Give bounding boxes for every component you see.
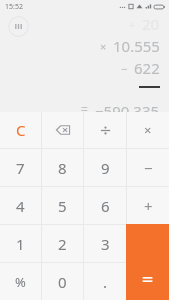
staticText: 8 bbox=[58, 158, 67, 178]
staticText: × bbox=[144, 121, 152, 139]
button[interactable]: . bbox=[84, 263, 126, 300]
button[interactable]: C bbox=[0, 112, 41, 148]
staticText: = bbox=[81, 101, 88, 112]
staticText: × bbox=[100, 39, 107, 54]
staticText: − bbox=[144, 158, 153, 178]
staticText: 6 bbox=[101, 196, 110, 216]
button[interactable]: History bbox=[8, 16, 29, 37]
button[interactable]: 9 bbox=[84, 149, 126, 186]
button[interactable]: 1 bbox=[0, 225, 41, 262]
button[interactable]: 6 bbox=[84, 187, 126, 224]
button[interactable]: 5 bbox=[42, 187, 83, 224]
button[interactable]: 2 bbox=[42, 225, 83, 262]
button[interactable]: × bbox=[127, 112, 169, 148]
staticText: + bbox=[144, 196, 153, 216]
button[interactable]: 4 bbox=[0, 187, 41, 224]
staticText: C bbox=[16, 120, 26, 140]
staticText: 4 bbox=[16, 196, 25, 216]
staticText: 15:52 bbox=[5, 2, 23, 12]
button[interactable] bbox=[84, 112, 126, 148]
staticText: 622 bbox=[134, 58, 160, 78]
button[interactable]: 7 bbox=[0, 149, 41, 186]
staticText: 0 bbox=[58, 272, 67, 292]
button[interactable]: − bbox=[127, 149, 169, 186]
button[interactable]: + bbox=[127, 187, 169, 224]
staticText: 10.555 bbox=[113, 36, 160, 56]
staticText: 2 bbox=[58, 234, 67, 254]
staticText: 1 bbox=[16, 234, 25, 254]
staticText: % bbox=[15, 273, 26, 291]
staticText: 9 bbox=[101, 158, 110, 178]
button[interactable]: 8 bbox=[42, 149, 83, 186]
staticText: 20 bbox=[142, 14, 160, 34]
button[interactable]: Equals bbox=[126, 224, 169, 300]
button[interactable]: % bbox=[0, 263, 41, 300]
button[interactable]: Backspace bbox=[42, 112, 83, 148]
staticText: 7 bbox=[16, 158, 25, 178]
button[interactable]: 0 bbox=[42, 263, 83, 300]
staticText: − bbox=[121, 61, 128, 76]
staticText: 5 bbox=[58, 196, 67, 216]
button[interactable]: 3 bbox=[84, 225, 126, 262]
staticText: −590.335 bbox=[95, 101, 160, 112]
staticText: 3 bbox=[101, 234, 110, 254]
staticText: . bbox=[103, 272, 108, 292]
